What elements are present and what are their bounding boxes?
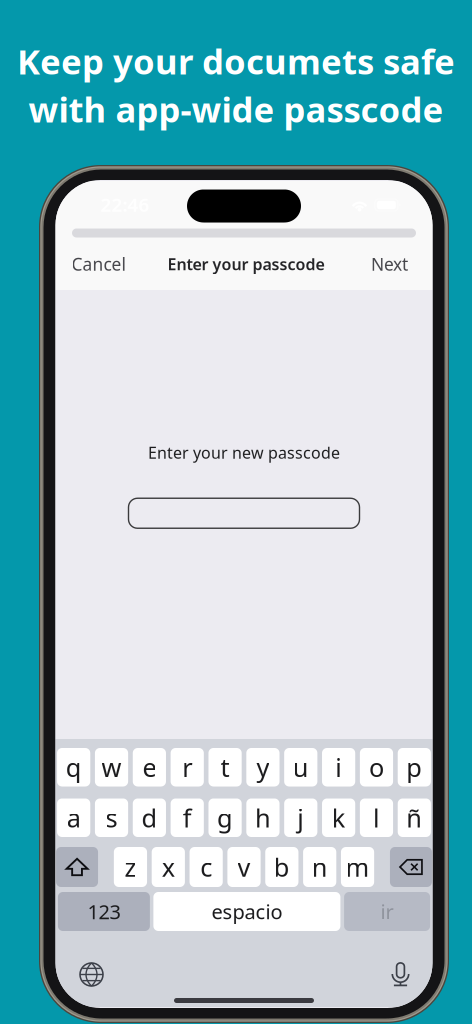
button[interactable]: h — [246, 798, 279, 837]
button[interactable]: ñ — [398, 798, 431, 837]
staticText: g — [217, 801, 233, 834]
button[interactable]: g — [208, 798, 242, 837]
staticText: 123 — [87, 898, 120, 925]
staticText: u — [293, 750, 309, 784]
button[interactable]: u — [284, 748, 317, 786]
staticText: t — [221, 750, 230, 784]
button[interactable]: Shift — [56, 847, 98, 887]
staticText: c — [200, 850, 212, 884]
staticText: n — [312, 850, 328, 884]
staticText: Enter your passcode — [167, 253, 324, 275]
staticText: with app-wide passcode — [28, 86, 443, 132]
button[interactable]: a — [57, 798, 90, 837]
button[interactable]: z — [114, 847, 147, 887]
staticText: espacio — [211, 898, 282, 925]
button[interactable]: Dictation — [392, 962, 409, 987]
staticText: m — [346, 850, 370, 884]
staticText: z — [124, 850, 136, 884]
staticText: b — [274, 850, 290, 884]
staticText: ñ — [406, 801, 422, 834]
staticText: d — [141, 801, 157, 834]
button[interactable]: o — [360, 748, 393, 786]
button[interactable]: t — [208, 748, 242, 786]
button[interactable]: p — [398, 748, 431, 786]
staticText: q — [66, 750, 82, 784]
button[interactable]: x — [152, 847, 185, 887]
staticText: k — [332, 801, 346, 834]
staticText: a — [67, 801, 81, 834]
staticText: f — [183, 801, 192, 834]
button[interactable]: r — [171, 748, 204, 786]
button[interactable]: Next — [350, 242, 428, 286]
staticText: x — [162, 850, 175, 884]
button[interactable]: y — [246, 748, 279, 786]
staticText: h — [255, 801, 271, 834]
button[interactable]: b — [265, 847, 298, 887]
button[interactable]: espacio — [153, 892, 340, 931]
button[interactable]: c — [190, 847, 223, 887]
staticText: Cancel — [71, 252, 125, 275]
staticText: ir — [381, 898, 394, 925]
button[interactable]: v — [227, 847, 261, 887]
button[interactable]: Delete — [390, 847, 432, 887]
button[interactable]: e — [133, 748, 166, 786]
button[interactable]: l — [360, 798, 393, 837]
staticText: s — [105, 801, 117, 834]
staticText: Keep your documets safe — [17, 38, 455, 84]
button[interactable]: 123 — [58, 892, 150, 931]
button[interactable]: j — [284, 798, 317, 837]
staticText: Next — [371, 252, 408, 275]
button[interactable]: q — [57, 748, 90, 786]
staticText: l — [373, 801, 380, 834]
staticText: r — [182, 750, 192, 784]
staticText: w — [101, 750, 121, 784]
button[interactable]: d — [133, 798, 166, 837]
staticText: o — [369, 750, 384, 784]
button[interactable]: f — [171, 798, 204, 837]
staticText: i — [335, 750, 342, 784]
button[interactable]: Cancel — [59, 242, 137, 286]
button[interactable]: m — [341, 847, 374, 887]
button[interactable]: s — [95, 798, 128, 837]
staticText: v — [237, 850, 250, 884]
button[interactable]: Change keyboard — [79, 962, 104, 987]
staticText: p — [406, 750, 422, 784]
button[interactable]: n — [303, 847, 336, 887]
button[interactable]: i — [322, 748, 355, 786]
button[interactable]: k — [322, 798, 355, 837]
button[interactable]: w — [95, 748, 128, 786]
staticText: j — [297, 801, 304, 834]
button[interactable]: ir — [344, 892, 430, 931]
staticText: y — [256, 750, 269, 784]
staticText: Enter your new passcode — [148, 442, 340, 463]
staticText: e — [142, 750, 156, 784]
